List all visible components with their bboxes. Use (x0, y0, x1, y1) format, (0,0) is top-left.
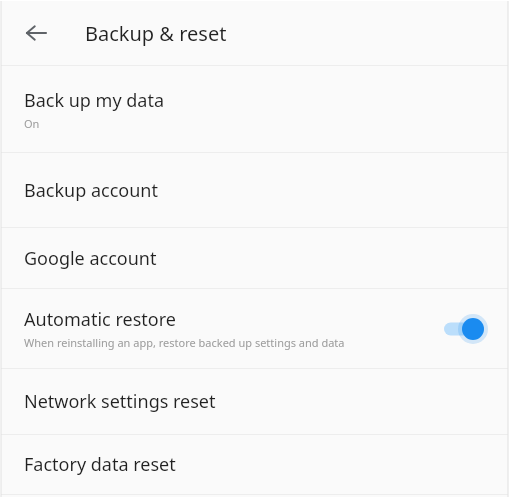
button[interactable]: Automatic restore toggle (442, 314, 488, 344)
staticText: Backup account (24, 178, 158, 203)
staticText: Network settings reset (24, 389, 216, 414)
staticText: Back up my data (24, 88, 165, 113)
button[interactable]: Factory data reset (1, 435, 508, 494)
staticText: Automatic restore (24, 307, 176, 332)
button[interactable]: Back up my data (1, 66, 508, 152)
staticText: Backup & reset (85, 20, 227, 47)
button[interactable]: Backup account (1, 153, 508, 227)
button[interactable]: Network settings reset (1, 369, 508, 434)
button[interactable]: Google account (1, 228, 508, 288)
button[interactable]: Back (15, 12, 57, 54)
button[interactable]: Automatic restore (1, 289, 508, 368)
staticText: On (24, 116, 40, 131)
staticText: Factory data reset (24, 452, 176, 477)
staticText: When reinstalling an app, restore backed… (24, 335, 345, 350)
staticText: Google account (24, 246, 157, 271)
